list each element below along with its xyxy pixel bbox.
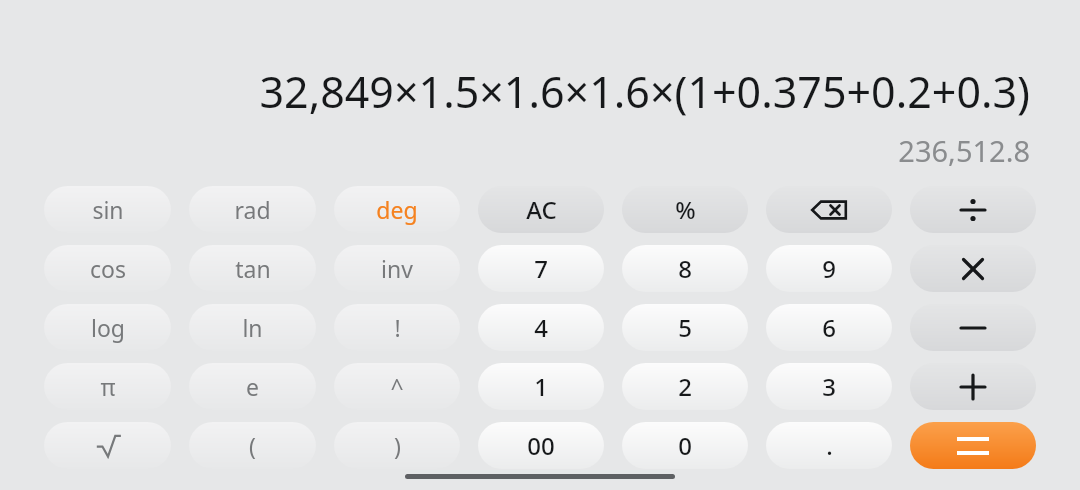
button[interactable]: 6: [766, 304, 892, 351]
button[interactable]: ln: [189, 304, 316, 351]
staticText: ): [394, 430, 401, 461]
staticText: π: [100, 371, 116, 402]
button[interactable]: AC: [478, 186, 604, 233]
staticText: log: [91, 312, 125, 343]
staticText: tan: [235, 253, 271, 284]
staticText: !: [394, 312, 401, 343]
button[interactable]: Add: [910, 363, 1036, 410]
staticText: ln: [242, 312, 263, 343]
button[interactable]: Divide: [910, 186, 1036, 233]
staticText: 0: [678, 429, 692, 462]
button[interactable]: 1: [478, 363, 604, 410]
button[interactable]: .: [766, 422, 892, 469]
button[interactable]: 7: [478, 245, 604, 292]
button[interactable]: 2: [622, 363, 748, 410]
button[interactable]: sin: [44, 186, 171, 233]
staticText: 8: [678, 252, 692, 285]
button[interactable]: rad: [189, 186, 316, 233]
button[interactable]: log: [44, 304, 171, 351]
staticText: 4: [534, 311, 548, 344]
button[interactable]: Multiply: [910, 245, 1036, 292]
button[interactable]: deg: [334, 186, 460, 233]
button[interactable]: (: [189, 422, 316, 469]
staticText: 5: [678, 311, 692, 344]
staticText: cos: [90, 253, 126, 284]
staticText: 1: [534, 370, 548, 403]
button[interactable]: Subtract: [910, 304, 1036, 351]
staticText: %: [675, 193, 696, 226]
button[interactable]: ): [334, 422, 460, 469]
staticText: 32,849×1.5×1.6×1.6×(1+0.375+0.2+0.3): [30, 62, 1030, 121]
staticText: 2: [678, 370, 692, 403]
button[interactable]: cos: [44, 245, 171, 292]
staticText: deg: [376, 194, 418, 225]
staticText: (: [249, 430, 256, 461]
staticText: 3: [822, 370, 836, 403]
button[interactable]: Equals: [910, 422, 1036, 469]
staticText: rad: [234, 194, 271, 225]
button[interactable]: Square root: [44, 422, 171, 469]
button[interactable]: ^: [334, 363, 460, 410]
staticText: 236,512.8: [30, 131, 1030, 170]
staticText: 9: [822, 252, 836, 285]
staticText: 00: [527, 429, 555, 462]
staticText: 7: [534, 252, 548, 285]
button[interactable]: 3: [766, 363, 892, 410]
button[interactable]: 0: [622, 422, 748, 469]
button[interactable]: tan: [189, 245, 316, 292]
button[interactable]: inv: [334, 245, 460, 292]
staticText: ^: [390, 371, 404, 402]
button[interactable]: 00: [478, 422, 604, 469]
staticText: .: [826, 429, 833, 462]
button[interactable]: 8: [622, 245, 748, 292]
button[interactable]: e: [189, 363, 316, 410]
button[interactable]: !: [334, 304, 460, 351]
button[interactable]: 9: [766, 245, 892, 292]
staticText: sin: [92, 194, 124, 225]
button[interactable]: π: [44, 363, 171, 410]
staticText: e: [246, 371, 259, 402]
button[interactable]: 5: [622, 304, 748, 351]
button[interactable]: 4: [478, 304, 604, 351]
button[interactable]: %: [622, 186, 748, 233]
staticText: 6: [822, 311, 836, 344]
staticText: AC: [526, 193, 557, 226]
button[interactable]: Backspace: [766, 186, 892, 233]
staticText: inv: [381, 253, 413, 284]
